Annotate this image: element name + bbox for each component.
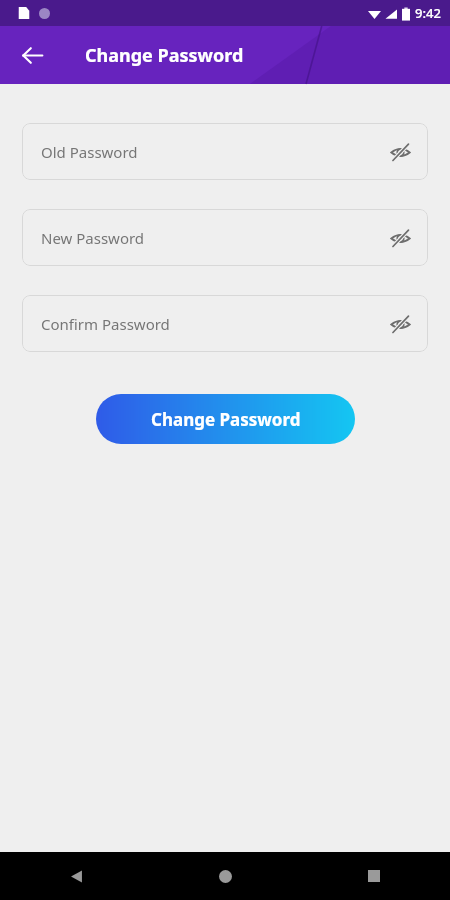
- button[interactable]: Old Password: [22, 123, 428, 180]
- staticText: Change Password: [85, 43, 244, 68]
- button[interactable]: Back: [10, 33, 54, 77]
- staticText: Change Password: [151, 408, 301, 431]
- staticText: Old Password: [41, 142, 138, 162]
- staticText: 9:42: [415, 4, 441, 22]
- button[interactable]: Confirm Password: [22, 295, 428, 352]
- button[interactable]: Show password: [381, 219, 419, 257]
- button[interactable]: Back: [56, 856, 96, 896]
- button[interactable]: Recent apps: [354, 856, 394, 896]
- button[interactable]: New Password: [22, 209, 428, 266]
- button[interactable]: Home: [205, 856, 245, 896]
- button[interactable]: Change Password: [96, 394, 355, 444]
- staticText: New Password: [41, 228, 145, 248]
- button[interactable]: Show password: [381, 305, 419, 343]
- staticText: Confirm Password: [41, 314, 170, 334]
- button[interactable]: Show password: [381, 133, 419, 171]
